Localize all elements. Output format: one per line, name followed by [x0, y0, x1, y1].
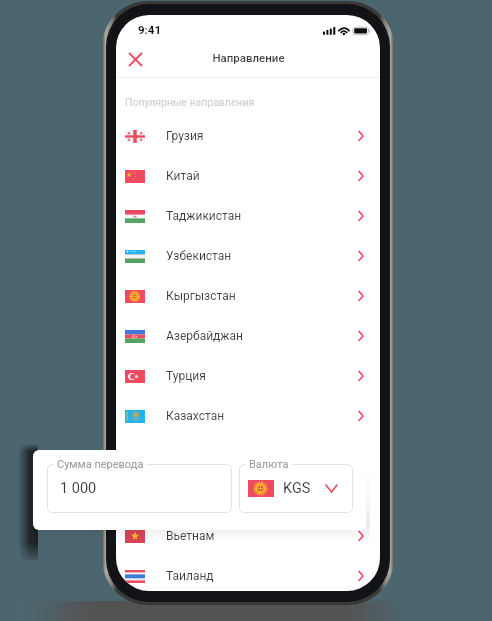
button[interactable]: Грузия [116, 116, 380, 156]
button[interactable]: Вьетнам [116, 516, 380, 556]
button[interactable]: Молдова [116, 476, 380, 516]
staticText: Сумма перевода [57, 458, 144, 471]
staticText: Кыргызстан [166, 289, 236, 303]
staticText: Популярные направления [125, 96, 255, 108]
staticText: Китай [166, 169, 200, 183]
button[interactable]: Китай [116, 156, 380, 196]
staticText: Турция [166, 369, 206, 383]
button[interactable]: Close [121, 45, 149, 73]
button[interactable]: Таджикистан [116, 196, 380, 236]
staticText: Таиланд [166, 569, 214, 583]
button[interactable]: Армения [116, 436, 380, 476]
button[interactable]: Турция [116, 356, 380, 396]
staticText: Казахстан [166, 409, 225, 423]
staticText: KGS [283, 480, 311, 497]
button[interactable]: Узбекистан [116, 236, 380, 276]
button[interactable]: Валюта [239, 464, 353, 513]
staticText: Вьетнам [166, 529, 215, 543]
staticText: 9:41 [138, 23, 162, 36]
staticText: Таджикистан [166, 209, 242, 223]
staticText: Валюта [249, 458, 289, 471]
staticText: 1 000 [60, 480, 97, 497]
staticText: Направление [212, 51, 285, 64]
button[interactable]: Сумма перевода [47, 464, 232, 513]
button[interactable]: Казахстан [116, 396, 380, 436]
staticText: Грузия [166, 129, 204, 143]
staticText: Азербайджан [166, 329, 243, 343]
button[interactable]: Таиланд [116, 556, 380, 591]
button[interactable]: Азербайджан [116, 316, 380, 356]
button[interactable]: Кыргызстан [116, 276, 380, 316]
staticText: Узбекистан [166, 249, 232, 263]
